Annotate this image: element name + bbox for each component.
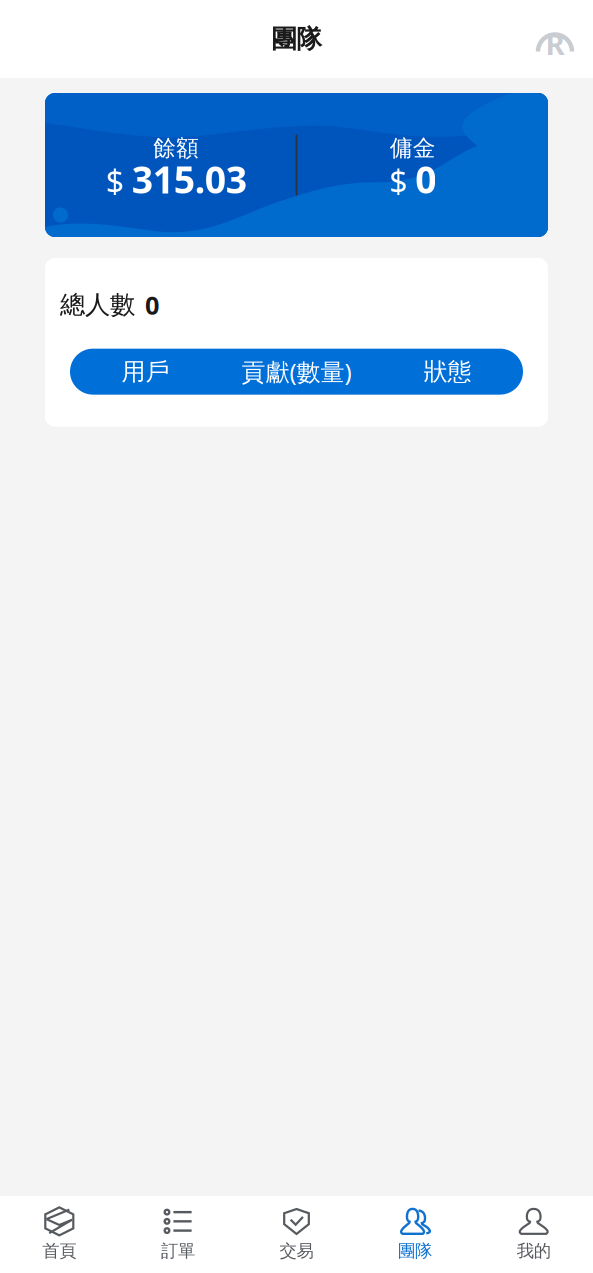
button[interactable]: 首頁	[0, 1198, 119, 1271]
button[interactable]: 用戶	[70, 349, 523, 395]
staticText: $	[389, 160, 407, 202]
staticText: 用戶	[121, 357, 169, 386]
staticText: 交易	[279, 1240, 313, 1262]
staticText: R	[545, 24, 564, 63]
staticText: 0	[145, 288, 159, 322]
staticText: 貢獻(數量)	[241, 356, 351, 388]
staticText: 傭金	[390, 134, 436, 162]
staticText: 總人數	[60, 289, 135, 320]
staticText: $	[106, 160, 124, 202]
button[interactable]: 團隊	[356, 1198, 474, 1271]
staticText: 訂單	[161, 1240, 195, 1262]
staticText: 0	[415, 154, 436, 204]
staticText: 315.03	[132, 154, 247, 204]
staticText: 團隊	[398, 1240, 432, 1262]
staticText: 首頁	[42, 1240, 76, 1262]
button[interactable]: 交易	[237, 1198, 356, 1271]
button[interactable]: Brand logo	[535, 14, 593, 64]
staticText: 狀態	[423, 357, 471, 386]
button[interactable]: 我的	[474, 1198, 593, 1271]
staticText: 我的	[517, 1240, 551, 1262]
button[interactable]: 訂單	[119, 1198, 237, 1271]
staticText: 餘額	[153, 134, 199, 162]
staticText: 團隊	[271, 23, 321, 54]
